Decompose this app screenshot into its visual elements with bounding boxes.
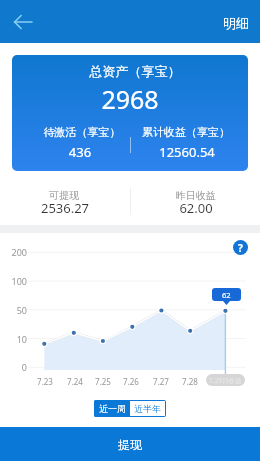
staticText: 436 [20,143,140,161]
staticText: 12560.54 [127,143,247,161]
button[interactable]: 近一周 [94,400,130,417]
staticText: 100 [0,275,27,287]
staticText: 7.26 [117,376,145,387]
staticText: 近一周 [99,403,126,414]
staticText: 明细 [223,15,249,31]
staticText: ? [238,241,243,255]
staticText: 提现 [118,437,142,452]
staticText: 昨日收益 [136,189,256,202]
staticText: 10 [0,333,27,345]
staticText: 近半年 [134,403,161,414]
staticText: 62.00 [136,199,256,217]
button[interactable]: Help [233,240,248,255]
staticText: 待激活（享宝） [22,125,142,139]
staticText: 50 [0,304,27,316]
button[interactable]: Back [8,7,38,37]
button[interactable]: 近半年 [130,401,165,416]
staticText: 累计收益（享宝） [126,125,246,139]
staticText: 7.24 [61,376,89,387]
staticText: 7.29日收益 [209,376,242,385]
staticText: 62 [222,290,231,300]
staticText: 2968 [70,82,190,116]
staticText: 总资产（享宝） [75,63,195,79]
staticText: 2536.27 [5,199,125,217]
staticText: 7.23 [31,376,59,387]
button[interactable]: 明细 [209,6,260,40]
staticText: 7.25 [89,376,117,387]
staticText: 200 [0,246,27,258]
staticText: 0 [0,361,27,373]
staticText: 可提现 [4,189,124,202]
button[interactable]: 提现 [0,427,260,461]
staticText: 7.27 [147,376,175,387]
staticText: 7.28 [176,376,204,387]
